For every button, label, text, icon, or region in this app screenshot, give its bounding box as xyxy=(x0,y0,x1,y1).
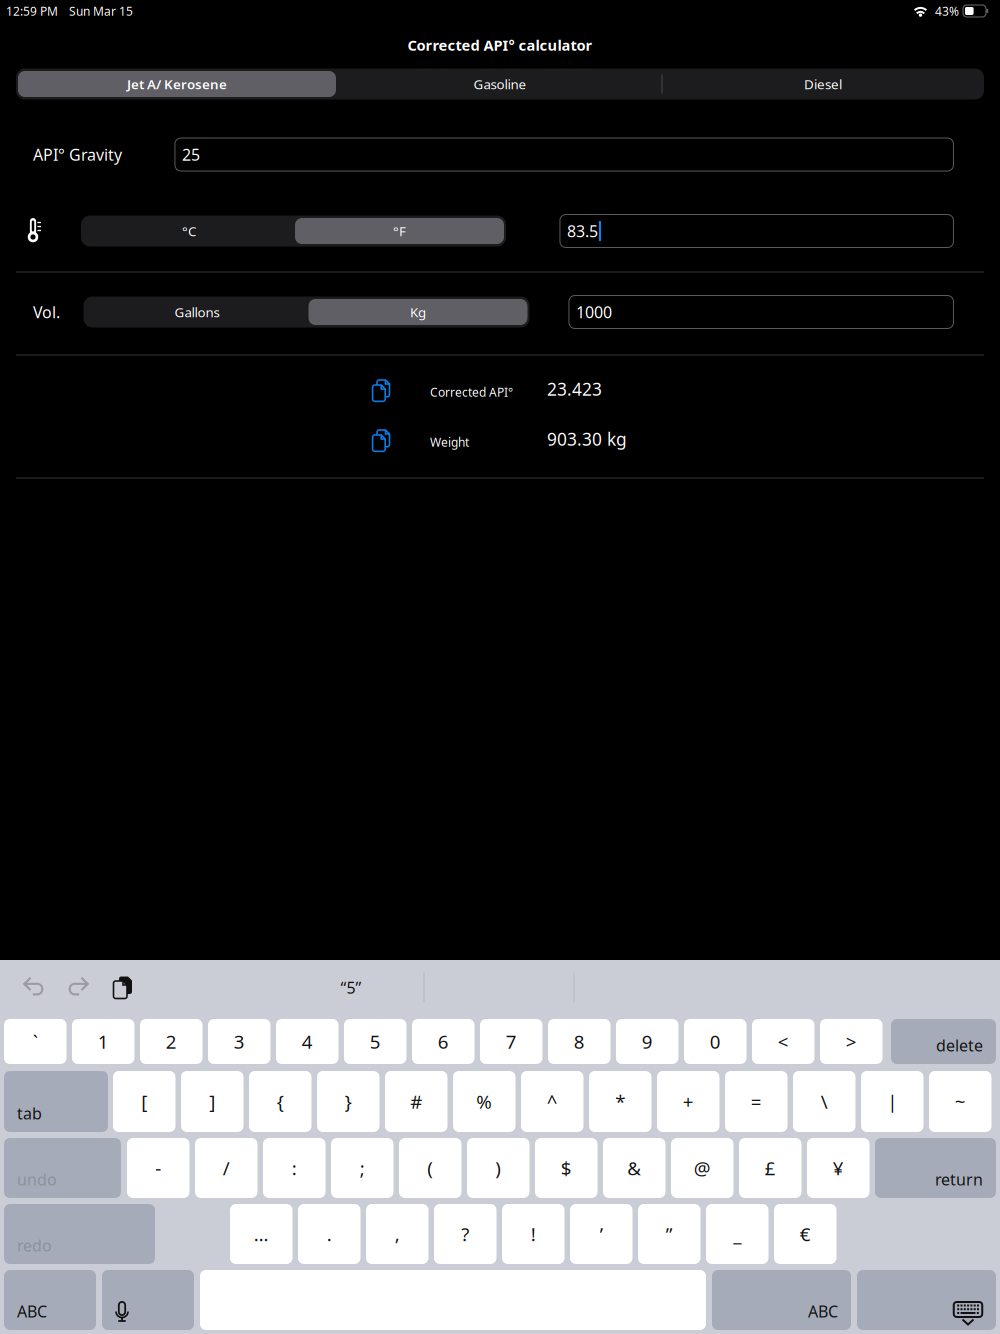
button[interactable]: ” xyxy=(638,1204,700,1264)
staticText: °C xyxy=(182,222,196,240)
button[interactable]: 6 xyxy=(412,1019,474,1064)
staticText: | xyxy=(887,1089,897,1114)
button[interactable]: 7 xyxy=(480,1019,542,1064)
staticText: 1 xyxy=(98,1029,109,1054)
button[interactable]: 3 xyxy=(208,1019,270,1064)
button[interactable]: Hide keyboard xyxy=(857,1270,996,1330)
button[interactable]: 0 xyxy=(684,1019,746,1064)
button[interactable]: ! xyxy=(502,1204,564,1264)
button[interactable]: : xyxy=(263,1138,325,1198)
button[interactable]: Copy Weight xyxy=(365,424,399,458)
button[interactable]: ) xyxy=(467,1138,529,1198)
button[interactable]: @ xyxy=(671,1138,733,1198)
staticText: redo xyxy=(17,1235,52,1256)
staticText: < xyxy=(778,1029,789,1054)
button[interactable]: * xyxy=(589,1071,651,1132)
staticText: # xyxy=(410,1089,422,1114)
button[interactable]: Paste xyxy=(105,970,139,1004)
staticText: { xyxy=(277,1089,284,1114)
staticText: : xyxy=(292,1156,297,1180)
staticText: undo xyxy=(17,1169,57,1190)
staticText: , xyxy=(395,1222,400,1246)
button[interactable]: ^ xyxy=(521,1071,583,1132)
staticText: 43% xyxy=(935,3,959,19)
button[interactable]: € xyxy=(774,1204,836,1264)
button[interactable]: { xyxy=(249,1071,311,1132)
staticText: Weight xyxy=(430,434,469,450)
button[interactable]: undo xyxy=(4,1138,121,1198)
button[interactable]: 2 xyxy=(140,1019,202,1064)
button[interactable]: tab xyxy=(4,1071,108,1132)
button[interactable]: / xyxy=(195,1138,257,1198)
staticText: 0 xyxy=(710,1029,721,1054)
staticText: ? xyxy=(461,1222,469,1246)
button[interactable]: ? xyxy=(434,1204,496,1264)
button[interactable]: ¥ xyxy=(807,1138,869,1198)
staticText: 7 xyxy=(506,1029,517,1054)
staticText: °F xyxy=(393,222,406,240)
button[interactable]: ] xyxy=(181,1071,243,1132)
button[interactable]: Gallons xyxy=(85,299,308,325)
button[interactable]: \ xyxy=(793,1071,855,1132)
button[interactable]: # xyxy=(385,1071,447,1132)
button[interactable]: “5” xyxy=(281,965,421,1009)
button[interactable]: return xyxy=(875,1138,996,1198)
button[interactable]: . xyxy=(298,1204,360,1264)
button[interactable]: ~ xyxy=(929,1071,991,1132)
button[interactable]: ABC xyxy=(4,1270,96,1330)
button[interactable]: ` xyxy=(4,1019,66,1064)
button[interactable]: Undo xyxy=(19,972,49,1002)
staticText: “5” xyxy=(340,977,361,998)
button[interactable]: $ xyxy=(535,1138,597,1198)
staticText: 9 xyxy=(642,1029,653,1054)
staticText: + xyxy=(683,1089,694,1114)
button[interactable]: % xyxy=(453,1071,515,1132)
button[interactable]: > xyxy=(820,1019,882,1064)
button[interactable]: redo xyxy=(4,1204,155,1264)
staticText: 2 xyxy=(166,1029,177,1054)
button[interactable]: + xyxy=(657,1071,719,1132)
button[interactable]: } xyxy=(317,1071,379,1132)
staticText: return xyxy=(935,1169,983,1190)
button[interactable]: Diesel xyxy=(661,71,984,97)
staticText: ! xyxy=(531,1222,536,1246)
button[interactable]: 1 xyxy=(72,1019,134,1064)
button[interactable]: 5 xyxy=(344,1019,406,1064)
button[interactable]: delete xyxy=(891,1019,996,1064)
staticText: ] xyxy=(209,1089,215,1114)
button[interactable]: [ xyxy=(113,1071,175,1132)
button[interactable]: - xyxy=(127,1138,189,1198)
button[interactable]: , xyxy=(366,1204,428,1264)
staticText: tab xyxy=(17,1103,42,1124)
button[interactable]: Jet A/ Kerosene xyxy=(18,71,336,97)
button[interactable]: °C xyxy=(83,218,295,244)
button[interactable]: < xyxy=(752,1019,814,1064)
button[interactable]: = xyxy=(725,1071,787,1132)
button[interactable]: Kg xyxy=(308,299,527,325)
button[interactable]: | xyxy=(861,1071,923,1132)
staticText: 6 xyxy=(438,1029,449,1054)
staticText: ) xyxy=(495,1156,501,1180)
button[interactable]: _ xyxy=(706,1204,768,1264)
staticText: / xyxy=(223,1156,230,1180)
staticText: Diesel xyxy=(804,75,842,93)
button[interactable]: ; xyxy=(331,1138,393,1198)
button[interactable]: Gasoline xyxy=(338,71,661,97)
button[interactable]: & xyxy=(603,1138,665,1198)
button[interactable]: ’ xyxy=(570,1204,632,1264)
button[interactable]: 9 xyxy=(616,1019,678,1064)
button[interactable]: ABC xyxy=(712,1270,851,1330)
button[interactable]: Copy Corrected API° xyxy=(365,374,399,408)
button[interactable]: Dictation xyxy=(102,1270,194,1330)
button[interactable]: °F xyxy=(295,218,504,244)
staticText: 4 xyxy=(302,1029,313,1054)
staticText: € xyxy=(800,1222,811,1246)
button[interactable]: Redo xyxy=(63,972,93,1002)
staticText: \ xyxy=(821,1089,828,1114)
button[interactable]: ( xyxy=(399,1138,461,1198)
button[interactable]: 4 xyxy=(276,1019,338,1064)
button[interactable]: 8 xyxy=(548,1019,610,1064)
button[interactable]: … xyxy=(230,1204,292,1264)
button[interactable]: £ xyxy=(739,1138,801,1198)
